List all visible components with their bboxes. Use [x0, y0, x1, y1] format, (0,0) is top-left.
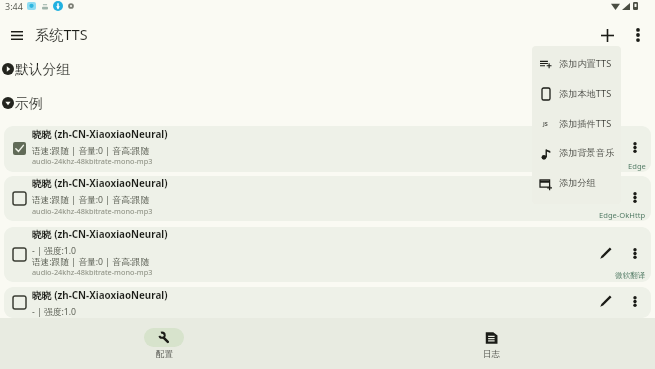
staticText: 系统TTS — [35, 25, 88, 45]
staticText: 语速:跟随 | 音量:0 | 音高:跟随 — [32, 145, 150, 157]
button[interactable]: Select voice — [4, 126, 651, 172]
button[interactable]: 配置 — [0, 318, 327, 369]
button[interactable]: 示例 — [0, 86, 655, 120]
button[interactable]: Voice options — [623, 185, 647, 209]
button[interactable]: 默认分组 — [0, 52, 655, 86]
staticText: 3:44 — [5, 0, 23, 12]
button[interactable]: Select voice — [9, 138, 29, 158]
staticText: Edge — [628, 161, 646, 171]
button[interactable]: Add — [592, 20, 622, 50]
button[interactable]: 添加内置TTS — [532, 48, 621, 78]
button[interactable]: Select voice — [9, 292, 29, 312]
staticText: Edge-OkHttp — [599, 210, 646, 220]
staticText: - | 强度:1.0 — [32, 306, 77, 318]
button[interactable]: Voice options — [623, 241, 647, 265]
staticText: 晓晓 (zh-CN-XiaoxiaoNeural) — [32, 228, 168, 241]
button[interactable]: Select voice — [4, 227, 651, 282]
staticText: audio-24khz-48kbitrate-mono-mp3 — [32, 156, 153, 166]
staticText: 默认分组 — [15, 61, 71, 78]
staticText: 日志 — [483, 349, 500, 360]
button[interactable]: 添加本地TTS — [532, 78, 621, 108]
staticText: 微软翻译 — [615, 271, 646, 281]
button[interactable]: Edit — [594, 241, 618, 265]
button[interactable]: Select voice — [9, 244, 29, 264]
staticText: 添加背景音乐 — [559, 147, 615, 159]
staticText: 添加分组 — [559, 177, 596, 189]
staticText: audio-24khz-48kbitrate-mono-mp3 — [32, 267, 153, 277]
button[interactable]: Voice options — [623, 289, 647, 313]
button[interactable]: Select voice — [4, 287, 651, 318]
staticText: - | 强度:1.0 — [32, 245, 77, 257]
button[interactable]: Voice options — [623, 135, 647, 159]
staticText: 添加本地TTS — [559, 87, 612, 100]
staticText: JS — [543, 120, 548, 127]
button[interactable]: Edit — [594, 289, 618, 313]
staticText: 晓晓 (zh-CN-XiaoxiaoNeural) — [32, 289, 168, 302]
button[interactable]: 添加分组 — [532, 168, 621, 198]
button[interactable]: More options — [623, 20, 653, 50]
button[interactable]: Select voice — [4, 176, 651, 221]
staticText: audio-24khz-48kbitrate-mono-mp3 — [32, 206, 153, 216]
staticText: 语速:跟随 | 音量:0 | 音高:跟随 — [32, 256, 150, 268]
button[interactable]: JS — [532, 108, 621, 138]
button[interactable]: Select voice — [9, 188, 29, 208]
button[interactable]: Navigation menu — [2, 20, 32, 50]
staticText: 添加内置TTS — [559, 57, 612, 70]
button[interactable]: 日志 — [327, 318, 655, 369]
staticText: 配置 — [156, 349, 173, 360]
button[interactable]: 添加背景音乐 — [532, 138, 621, 168]
staticText: 添加插件TTS — [559, 117, 612, 130]
staticText: 晓晓 (zh-CN-XiaoxiaoNeural) — [32, 177, 168, 190]
staticText: 示例 — [15, 95, 43, 112]
staticText: 语速:跟随 | 音量:0 | 音高:跟随 — [32, 194, 150, 206]
staticText: 晓晓 (zh-CN-XiaoxiaoNeural) — [32, 128, 168, 141]
